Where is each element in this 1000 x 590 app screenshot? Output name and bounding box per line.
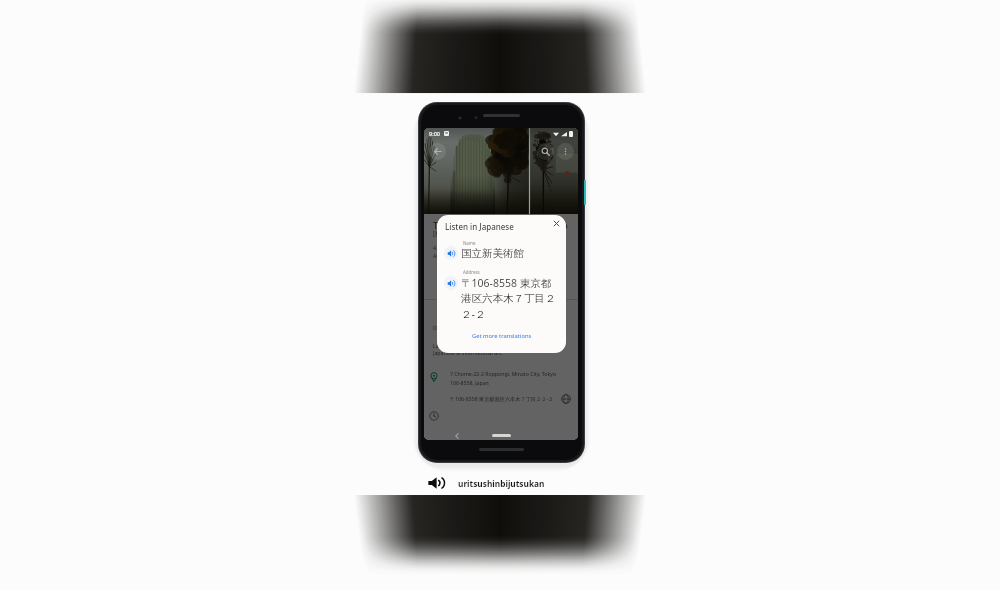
staticText: Listen in Japanese <box>445 221 514 232</box>
staticText: Address <box>463 269 480 275</box>
staticText: 106-8558, Japan <box>450 379 489 386</box>
staticText: Get more translations <box>472 332 532 340</box>
button[interactable]: Back <box>429 143 446 160</box>
staticText: Name <box>463 240 476 246</box>
staticText: 国立新美術館 <box>433 230 473 238</box>
staticText: 〒106-8558 東京都港区六本木７丁目２２-２ <box>450 395 554 402</box>
button[interactable]: Home <box>492 434 511 437</box>
button[interactable]: Play pronunciation <box>428 477 446 489</box>
staticText: The National Art Center, Tokyo <box>433 219 568 231</box>
staticText: Large museum with rotating exhibits of <box>433 342 530 349</box>
staticText: 9:00 <box>429 130 440 137</box>
button[interactable]: Back <box>452 431 462 440</box>
staticText: 〒106-8558 東京都港区六本木７丁目２２-２ <box>461 276 561 321</box>
staticText: Description <box>433 324 461 331</box>
staticText: 4.3 ★★★★ 3,212 reviews <box>433 244 496 251</box>
button[interactable]: Get more translations <box>437 326 566 346</box>
button[interactable]: Play <box>444 276 458 290</box>
button[interactable]: Search <box>537 143 554 160</box>
staticText: Art museum <box>433 252 464 259</box>
staticText: 国立新美術館 <box>461 247 524 260</box>
staticText: Japanese & international art. <box>433 349 503 356</box>
button[interactable]: Play <box>444 246 458 260</box>
button[interactable]: Close <box>551 218 562 229</box>
button[interactable]: More options <box>557 143 574 160</box>
staticText: 7 Chome-22-2 Roppongi, Minato City, Toky… <box>450 370 557 377</box>
staticText: uritsushinbijutsukan <box>458 478 545 489</box>
